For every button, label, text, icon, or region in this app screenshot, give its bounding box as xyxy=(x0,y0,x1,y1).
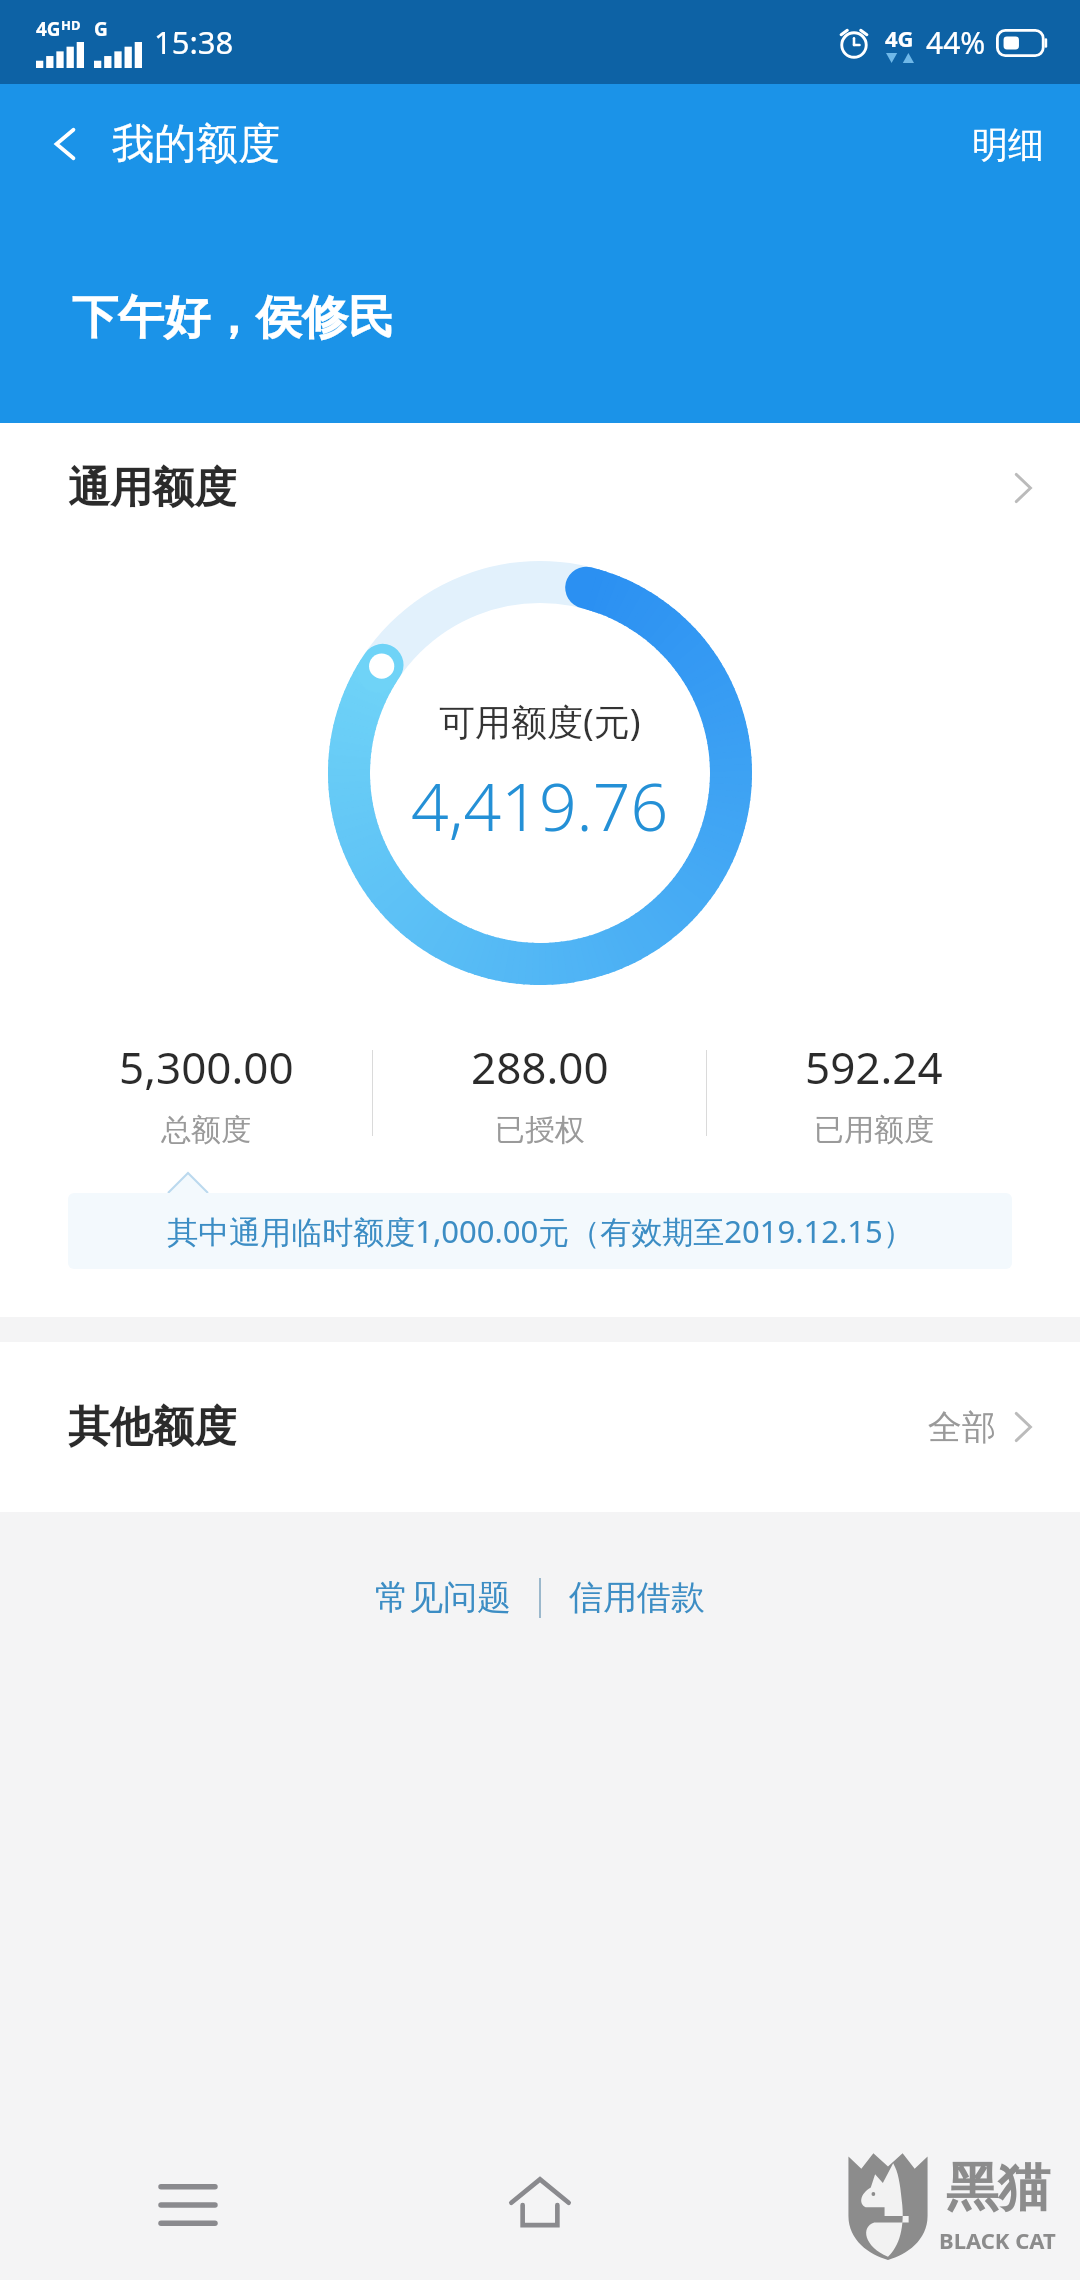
button[interactable]: 返回 xyxy=(30,108,102,180)
staticText: G xyxy=(94,16,108,42)
staticText: 15:38 xyxy=(154,21,234,63)
staticText: 44% xyxy=(926,22,986,63)
staticText: 明细 xyxy=(972,122,1044,167)
button[interactable]: 菜单 xyxy=(140,2157,236,2253)
staticText: 其中通用临时额度1,000.00元（有效期至2019.12.15） xyxy=(167,1210,914,1252)
button[interactable]: 我的额度 xyxy=(112,118,280,171)
staticText: 5,300.00 xyxy=(119,1037,294,1097)
staticText: 总额度 xyxy=(161,1111,251,1149)
staticText: 全部 xyxy=(928,1406,996,1449)
staticText: BLACK CAT xyxy=(939,2225,1056,2255)
staticText: 4,419.76 xyxy=(411,760,669,850)
button[interactable]: 常见问题 xyxy=(361,1564,525,1631)
staticText: 已授权 xyxy=(495,1111,585,1149)
button[interactable]: 其他额度 xyxy=(0,1342,1080,1512)
button[interactable]: 明细 xyxy=(964,112,1052,177)
staticText: 黑猫 xyxy=(946,2155,1050,2221)
staticText: 其他额度 xyxy=(68,1401,236,1454)
staticText: 常见问题 xyxy=(375,1576,511,1619)
staticText: HD xyxy=(61,16,81,34)
staticText: 信用借款 xyxy=(569,1576,705,1619)
staticText: 可用额度(元) xyxy=(439,697,641,746)
staticText: 下午好，侯修民 xyxy=(72,289,394,347)
staticText: 通用额度 xyxy=(68,462,236,515)
staticText: 288.00 xyxy=(471,1037,609,1097)
button[interactable]: 信用借款 xyxy=(555,1564,719,1631)
button[interactable]: 通用额度 xyxy=(0,423,1080,553)
staticText: 4G xyxy=(36,16,61,42)
button[interactable]: 其中通用临时额度1,000.00元（有效期至2019.12.15） xyxy=(68,1193,1012,1269)
button[interactable]: 主页 xyxy=(490,2155,590,2255)
staticText: 4G xyxy=(885,23,914,53)
staticText: 已用额度 xyxy=(814,1111,934,1149)
staticText: 592.24 xyxy=(805,1037,943,1097)
